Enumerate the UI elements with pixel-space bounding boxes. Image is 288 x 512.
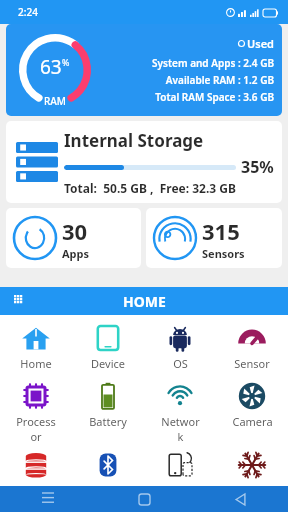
button[interactable]: 315 xyxy=(146,208,282,268)
staticText: Networ k xyxy=(161,414,200,444)
staticText: System and Apps : 2.4 GB xyxy=(152,56,274,70)
staticText: Internal Storage xyxy=(64,129,204,152)
staticText: Sensors xyxy=(202,246,245,261)
button[interactable]: Cooling xyxy=(216,450,288,486)
staticText: 315 xyxy=(202,216,240,246)
staticText: Home xyxy=(20,356,52,371)
button[interactable]: Internal Storage xyxy=(6,121,282,203)
button[interactable]: Process or xyxy=(0,379,72,446)
button[interactable]: Menu xyxy=(0,287,288,315)
button[interactable]: Recent apps xyxy=(0,486,96,512)
button[interactable]: OS xyxy=(144,321,216,373)
button[interactable]: Camera xyxy=(216,379,288,431)
button[interactable]: Used xyxy=(238,36,274,51)
staticText: 35% xyxy=(241,156,274,178)
staticText: Process or xyxy=(16,414,56,444)
staticText: Total RAM Space : 3.6 GB xyxy=(155,90,274,104)
button[interactable]: Database xyxy=(0,450,72,486)
staticText: RAM xyxy=(44,94,67,108)
staticText: 30 xyxy=(62,216,88,246)
button[interactable]: Back xyxy=(192,486,288,512)
staticText: Device xyxy=(91,356,125,371)
button[interactable]: Menu xyxy=(14,295,27,308)
staticText: HOME xyxy=(123,292,166,311)
staticText: Camera xyxy=(232,414,273,429)
staticText: Apps xyxy=(62,246,90,261)
staticText: Used xyxy=(247,36,274,51)
button[interactable]: Sensor xyxy=(216,321,288,373)
button[interactable]: Device xyxy=(72,321,144,373)
staticText: Available RAM : 1.2 GB xyxy=(165,73,274,87)
staticText: % xyxy=(62,56,70,68)
staticText: Battery xyxy=(89,414,127,429)
button[interactable]: Battery xyxy=(72,379,144,431)
button[interactable]: 63 xyxy=(6,24,282,116)
staticText: 63 xyxy=(40,54,62,80)
button[interactable]: Rotation xyxy=(144,450,216,486)
button[interactable]: 30 xyxy=(6,208,141,268)
button[interactable]: Home xyxy=(96,486,192,512)
button[interactable]: Home xyxy=(0,321,72,373)
staticText: Total: 50.5 GB , Free: 32.3 GB xyxy=(64,180,236,196)
button[interactable]: Bluetooth xyxy=(72,450,144,486)
staticText: 2:24 xyxy=(18,5,38,19)
staticText: Sensor xyxy=(234,356,270,371)
staticText: OS xyxy=(173,356,188,371)
button[interactable]: Networ k xyxy=(144,379,216,446)
